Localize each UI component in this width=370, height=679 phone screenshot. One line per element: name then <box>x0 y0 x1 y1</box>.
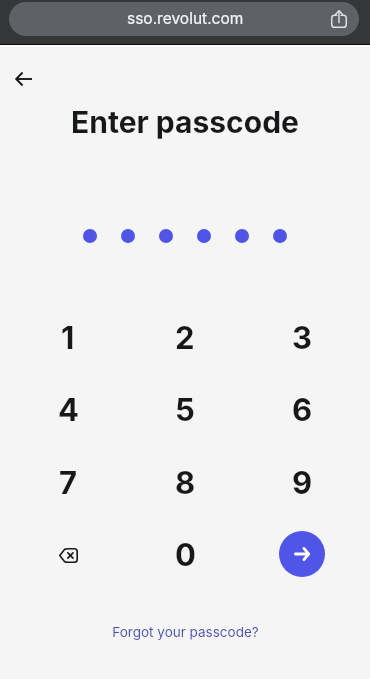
staticText: 6 <box>292 391 313 429</box>
button[interactable]: 2 <box>150 308 220 368</box>
button[interactable]: 6 <box>267 380 337 440</box>
staticText: 5 <box>175 391 195 429</box>
staticText: Forgot your passcode? <box>112 624 259 640</box>
staticText: 7 <box>59 464 78 502</box>
staticText: 0 <box>175 536 196 574</box>
staticText: 1 <box>61 319 75 357</box>
button[interactable]: Continue <box>279 531 325 577</box>
staticText: 9 <box>292 464 313 502</box>
staticText: 4 <box>58 391 79 429</box>
button[interactable]: sso.revolut.com <box>9 2 359 36</box>
staticText: 2 <box>175 319 195 357</box>
button[interactable]: 7 <box>33 453 103 513</box>
button[interactable]: Share <box>325 5 353 33</box>
staticText: 8 <box>175 464 196 502</box>
button[interactable]: 3 <box>267 308 337 368</box>
button[interactable]: 1 <box>33 308 103 368</box>
button[interactable]: Delete <box>33 525 103 585</box>
button[interactable]: 8 <box>150 453 220 513</box>
button[interactable]: 0 <box>150 525 220 585</box>
button[interactable]: Back <box>2 57 46 101</box>
button[interactable]: 4 <box>33 380 103 440</box>
staticText: 3 <box>292 319 313 357</box>
staticText: Enter passcode <box>0 104 370 140</box>
button[interactable]: Forgot your passcode? <box>0 619 370 645</box>
button[interactable]: 9 <box>267 453 337 513</box>
staticText: sso.revolut.com <box>127 9 244 28</box>
button[interactable]: 5 <box>150 380 220 440</box>
